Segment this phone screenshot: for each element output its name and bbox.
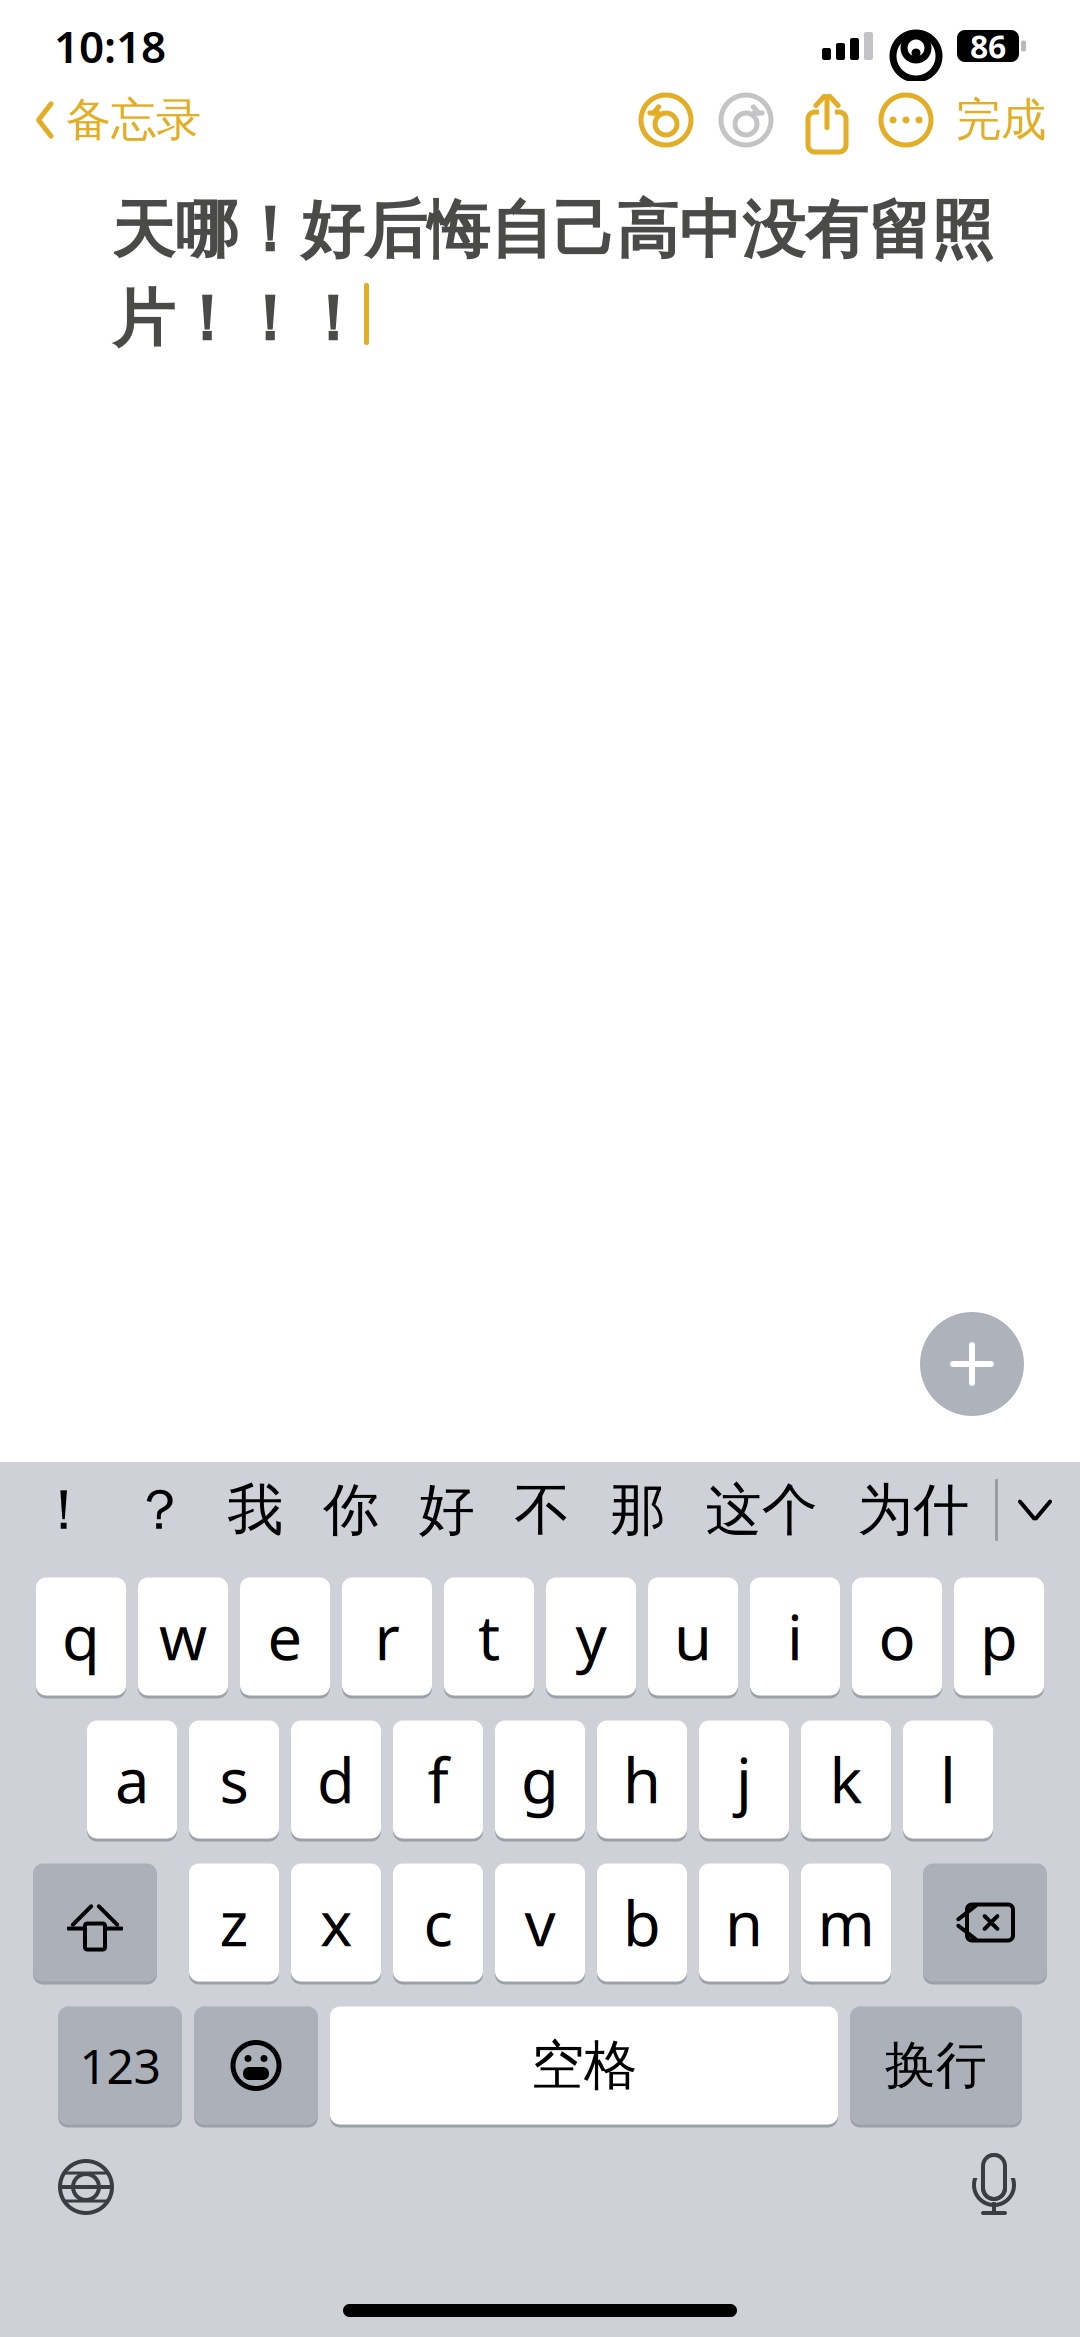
button[interactable]: 共享 [802, 91, 852, 149]
button[interactable]: 重做 [718, 92, 774, 148]
staticText: n [725, 1882, 763, 1963]
button[interactable]: m [801, 1862, 891, 1983]
button[interactable]: 完成 [956, 84, 1046, 156]
button[interactable]: f [393, 1719, 483, 1840]
staticText: 为什 [857, 1476, 969, 1544]
button[interactable]: e [240, 1576, 330, 1697]
button[interactable]: b [597, 1862, 687, 1983]
staticText: 10:18 [54, 17, 166, 75]
staticText: 备忘录 [66, 92, 201, 148]
button[interactable]: s [189, 1719, 279, 1840]
staticText: ？ [132, 1476, 188, 1544]
staticText: t [478, 1596, 500, 1677]
button[interactable]: 这个 [692, 1462, 832, 1558]
button[interactable]: 为什 [843, 1462, 983, 1558]
staticText: 换行 [885, 2034, 987, 2097]
button[interactable]: y [546, 1576, 636, 1697]
button[interactable]: h [597, 1719, 687, 1840]
staticText: g [521, 1739, 559, 1820]
staticText: z [219, 1882, 248, 1963]
staticText: a [115, 1739, 149, 1820]
button[interactable]: 你 [309, 1462, 393, 1558]
staticText: m [817, 1882, 874, 1963]
button[interactable]: 删除 [923, 1862, 1047, 1983]
staticText: c [423, 1882, 452, 1963]
staticText: 这个 [706, 1476, 818, 1544]
button[interactable]: l [903, 1719, 993, 1840]
button[interactable]: 撤销 [638, 92, 694, 148]
staticText: p [980, 1596, 1018, 1677]
button[interactable]: r [342, 1576, 432, 1697]
button[interactable]: g [495, 1719, 585, 1840]
staticText: h [623, 1739, 661, 1820]
staticText: y [575, 1596, 606, 1677]
button[interactable]: 空格 [330, 2005, 838, 2126]
button[interactable]: 收起候选 [998, 1462, 1072, 1558]
staticText: o [878, 1596, 915, 1677]
button[interactable]: d [291, 1719, 381, 1840]
staticText: 空格 [531, 2033, 637, 2098]
staticText: q [62, 1596, 100, 1677]
button[interactable]: 备忘录 [34, 84, 201, 156]
button[interactable]: x [291, 1862, 381, 1983]
staticText: r [374, 1596, 399, 1677]
button[interactable]: 大写锁定 [33, 1862, 157, 1983]
button[interactable]: 听写 [966, 2156, 1022, 2218]
staticText: e [267, 1596, 302, 1677]
staticText: k [829, 1739, 862, 1820]
button[interactable]: v [495, 1862, 585, 1983]
button[interactable]: 那 [596, 1462, 680, 1558]
staticText: b [623, 1882, 661, 1963]
button[interactable]: 我 [213, 1462, 297, 1558]
button[interactable]: z [189, 1862, 279, 1983]
button[interactable]: p [954, 1576, 1044, 1697]
button[interactable]: 换行 [850, 2005, 1022, 2126]
staticText: f [427, 1739, 448, 1820]
button[interactable]: u [648, 1576, 738, 1697]
button[interactable]: k [801, 1719, 891, 1840]
staticText: d [317, 1739, 355, 1820]
button[interactable]: 添加附件 [920, 1312, 1024, 1416]
button[interactable]: 好 [405, 1462, 489, 1558]
button[interactable]: q [36, 1576, 126, 1697]
button[interactable]: o [852, 1576, 942, 1697]
staticText: 完成 [956, 92, 1046, 148]
button[interactable]: 更多 [878, 92, 934, 148]
staticText: 那 [610, 1476, 666, 1544]
button[interactable]: 切换键盘 [58, 2159, 114, 2215]
button[interactable]: n [699, 1862, 789, 1983]
button[interactable]: c [393, 1862, 483, 1983]
button[interactable]: a [87, 1719, 177, 1840]
button[interactable]: ？ [118, 1462, 202, 1558]
button[interactable]: i [750, 1576, 840, 1697]
staticText: i [787, 1596, 803, 1677]
staticText: s [219, 1739, 248, 1820]
staticText: x [320, 1882, 352, 1963]
staticText: w [159, 1596, 207, 1677]
button[interactable]: ！ [22, 1462, 106, 1558]
button[interactable]: w [138, 1576, 228, 1697]
staticText: 天哪！好后悔自己高中没有留照 [112, 192, 994, 269]
staticText: u [674, 1596, 712, 1677]
staticText: 86 [970, 25, 1006, 67]
button[interactable]: j [699, 1719, 789, 1840]
staticText: 我 [227, 1476, 283, 1544]
staticText: ！ [36, 1476, 92, 1544]
button[interactable]: 表情符号 [194, 2005, 318, 2126]
staticText: l [940, 1739, 956, 1820]
staticText: 你 [323, 1476, 379, 1544]
button[interactable]: t [444, 1576, 534, 1697]
staticText: 123 [79, 2034, 160, 2097]
staticText: j [736, 1739, 752, 1820]
staticText: 好 [419, 1476, 475, 1544]
staticText: 片！！！ [112, 281, 364, 358]
staticText: v [524, 1882, 555, 1963]
button[interactable]: 不 [500, 1462, 584, 1558]
staticText: 不 [514, 1476, 570, 1544]
button[interactable]: 123 [58, 2005, 182, 2126]
